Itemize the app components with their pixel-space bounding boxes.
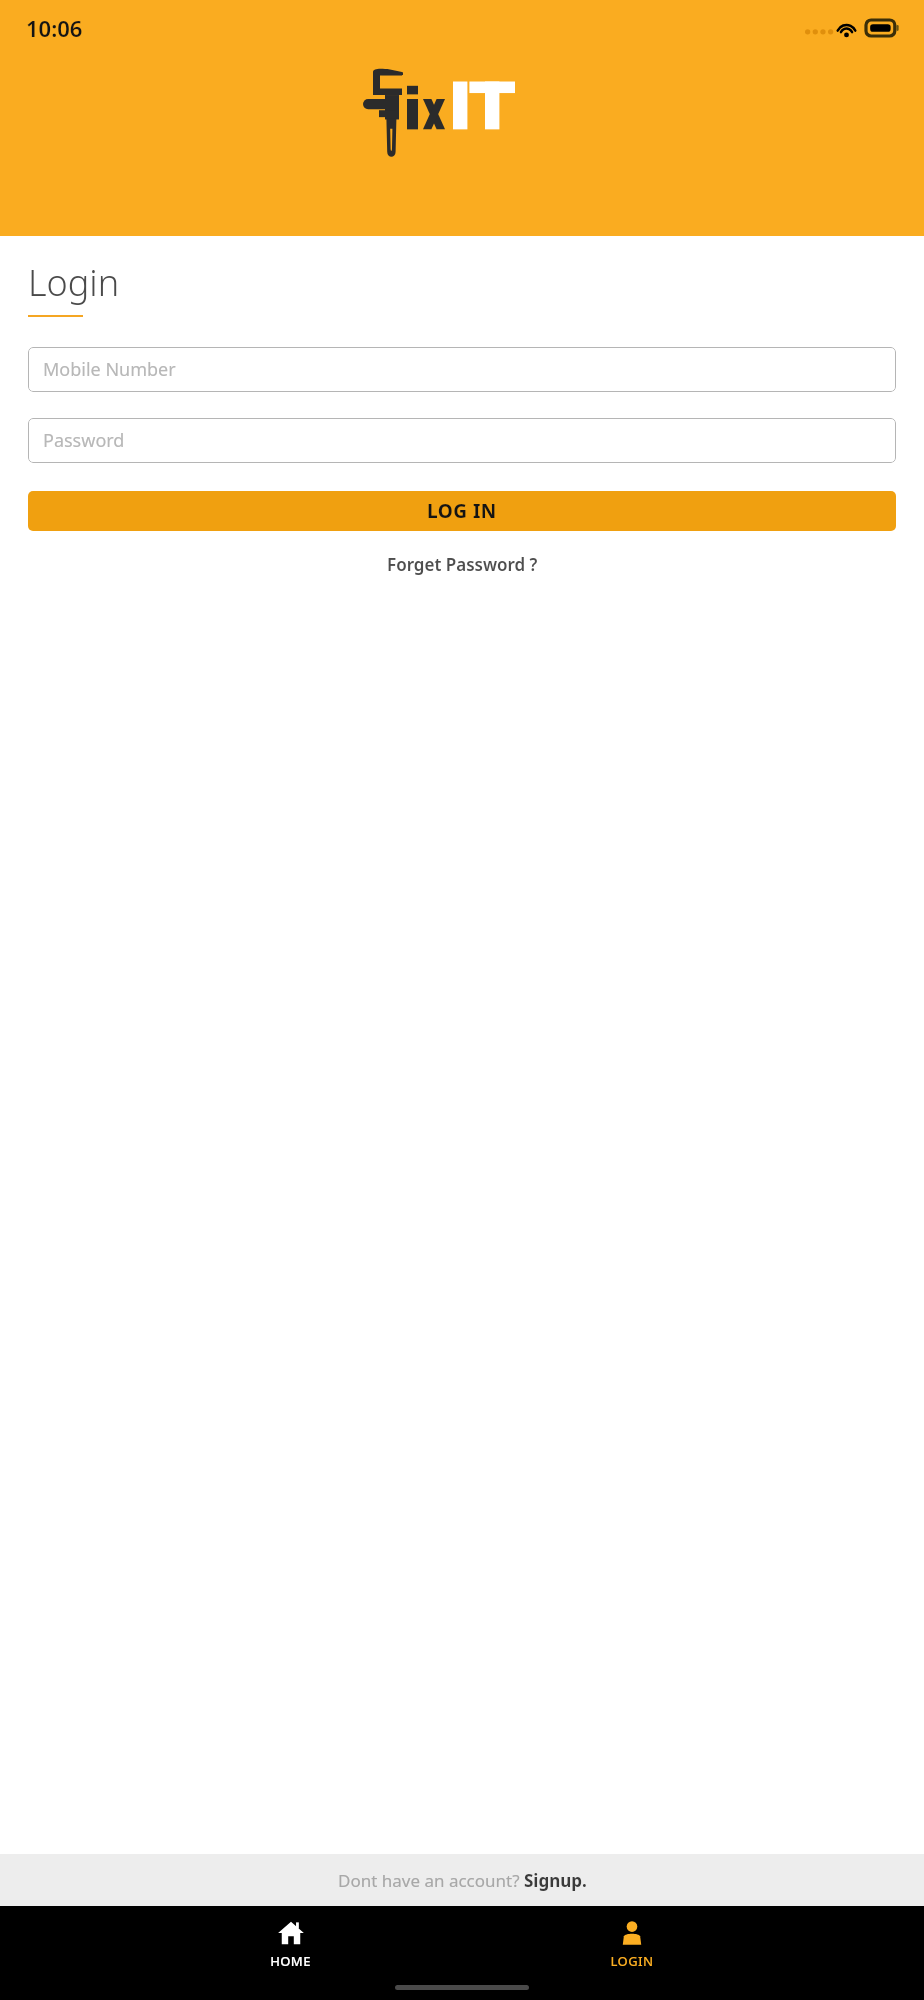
button[interactable]: Mobile Number xyxy=(28,347,896,392)
staticText: Dont have an account? xyxy=(338,1869,524,1892)
staticText: LOGIN xyxy=(610,1952,654,1970)
button[interactable]: LOGIN xyxy=(580,1915,684,1974)
staticText: HOME xyxy=(270,1952,311,1970)
button[interactable]: LOG IN xyxy=(28,491,896,531)
button[interactable]: Dont have an account? xyxy=(0,1854,924,1906)
staticText: Login xyxy=(28,258,120,307)
staticText: Password xyxy=(43,428,125,453)
button[interactable]: Password xyxy=(28,418,896,463)
staticText: 10:06 xyxy=(26,13,83,43)
staticText: LOG IN xyxy=(427,498,497,524)
staticText: Mobile Number xyxy=(43,357,176,382)
staticText: Signup. xyxy=(524,1869,587,1892)
button[interactable]: Forget Password ? xyxy=(373,549,552,580)
button[interactable]: HOME xyxy=(240,1915,341,1974)
staticText: Forget Password ? xyxy=(387,553,538,576)
